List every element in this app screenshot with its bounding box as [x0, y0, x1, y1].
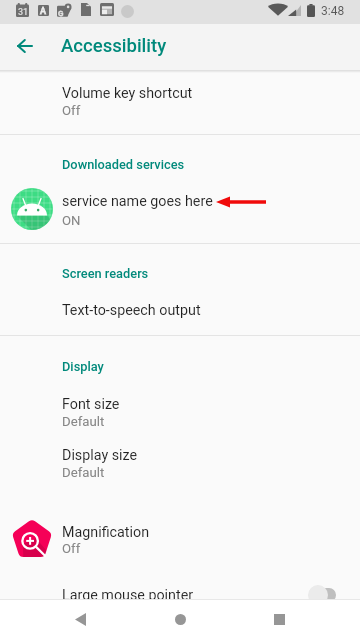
button[interactable]: service name goes here — [0, 177, 360, 243]
staticText: Off — [62, 541, 81, 556]
staticText: Magnification — [62, 524, 150, 541]
staticText: Default — [62, 414, 105, 429]
button[interactable]: Text-to-speech output — [0, 288, 360, 335]
staticText: Volume key shortcut — [62, 85, 193, 102]
button[interactable]: Back — [56, 599, 104, 640]
staticText: 31 — [18, 7, 29, 18]
staticText: Default — [62, 465, 105, 480]
button[interactable]: Display size — [0, 441, 360, 493]
staticText: service name goes here — [62, 193, 213, 210]
other: Pointer annotation — [216, 196, 266, 208]
button[interactable]: Volume key shortcut — [0, 79, 360, 134]
button[interactable]: Navigate up — [4, 25, 45, 66]
staticText: Font size — [62, 396, 120, 413]
staticText: Large mouse pointer — [62, 587, 194, 604]
staticText: Display — [62, 359, 104, 374]
staticText: Off — [62, 103, 81, 118]
staticText: Screen readers — [62, 266, 149, 281]
staticText: A — [40, 6, 46, 17]
button[interactable]: Recent apps — [255, 599, 303, 640]
staticText: 3:48 — [321, 4, 345, 18]
staticText: Text-to-speech output — [62, 302, 201, 319]
staticText: G — [58, 9, 64, 18]
staticText: Downloaded services — [62, 157, 185, 172]
staticText: ON — [62, 213, 81, 228]
staticText: Display size — [62, 447, 138, 464]
staticText: Accessibility — [61, 35, 167, 57]
button[interactable]: Large mouse pointer — [0, 577, 360, 617]
button[interactable]: Home — [156, 599, 204, 640]
button[interactable]: Magnification — [0, 508, 360, 570]
button[interactable]: Font size — [0, 390, 360, 440]
button[interactable]: Large mouse pointer toggle, off — [308, 585, 336, 605]
